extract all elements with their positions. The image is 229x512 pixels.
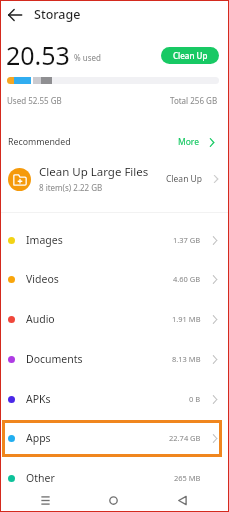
staticText: 22.74 GB [169, 433, 201, 443]
staticText: 265 MB [174, 473, 201, 483]
staticText: 8.13 MB [172, 354, 201, 364]
staticText: Storage [34, 6, 81, 23]
button[interactable]: Clean Up Large Files [0, 162, 229, 196]
button[interactable]: Audio [0, 299, 229, 339]
staticText: 20.53 [6, 38, 70, 68]
staticText: Images [26, 233, 63, 247]
button[interactable]: Images [0, 220, 229, 260]
button[interactable]: Clean Up [161, 47, 219, 64]
staticText: Apps [26, 431, 51, 445]
staticText: Documents [26, 352, 83, 366]
button[interactable]: Back [168, 487, 196, 512]
staticText: Videos [26, 272, 59, 286]
staticText: 8 item(s) 2.22 GB [39, 182, 103, 193]
staticText: More [178, 136, 199, 148]
staticText: 1.91 MB [172, 314, 201, 324]
button[interactable]: Other [0, 458, 229, 498]
staticText: Audio [26, 312, 55, 326]
staticText: 0 B [189, 394, 201, 404]
staticText: APKs [26, 392, 51, 406]
button[interactable]: Apps [0, 418, 229, 458]
staticText: Clean Up [166, 173, 203, 185]
staticText: 4.60 GB [173, 274, 201, 284]
button[interactable]: APKs [0, 379, 229, 419]
staticText: Recommended [8, 136, 71, 148]
staticText: Clean Up Large Files [39, 164, 149, 180]
staticText: Used 52.55 GB [7, 95, 62, 106]
staticText: Total 256 GB [170, 95, 218, 106]
button[interactable]: Home [99, 487, 127, 512]
button[interactable]: More [178, 136, 215, 148]
staticText: 1.37 GB [173, 235, 201, 245]
staticText: Clean Up [173, 50, 208, 61]
staticText: % used [74, 52, 101, 63]
button[interactable]: Videos [0, 259, 229, 299]
button[interactable]: Documents [0, 339, 229, 379]
button[interactable]: Back [0, 0, 30, 29]
button[interactable]: Recents [31, 487, 59, 512]
staticText: Other [26, 471, 55, 485]
